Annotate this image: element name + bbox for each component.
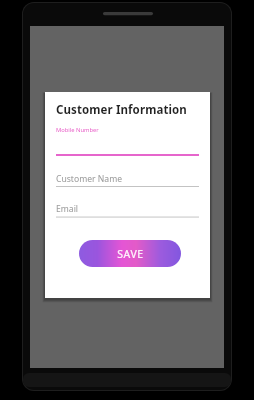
button[interactable]: Mobile Number [56,126,199,155]
staticText: SAVE [117,247,144,261]
staticText: Mobile Number [56,126,99,134]
staticText: Email [56,203,79,215]
button[interactable]: Email [56,200,199,217]
button[interactable]: Save customer information [79,240,181,267]
staticText: Customer Information [56,102,187,118]
button[interactable]: Customer Name [56,170,199,187]
staticText: Customer Name [56,173,123,185]
